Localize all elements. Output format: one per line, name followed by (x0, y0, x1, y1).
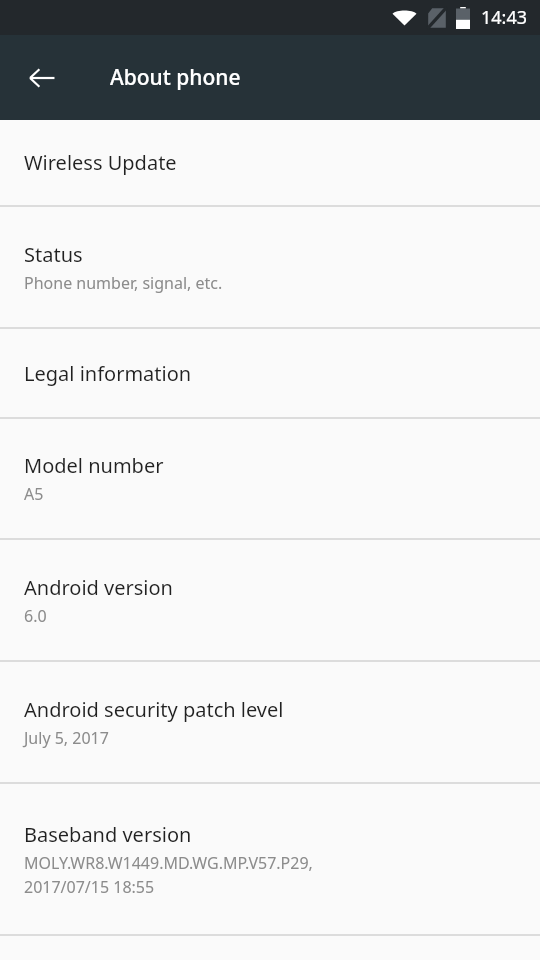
button[interactable]: Android security patch level (0, 662, 540, 782)
staticText: 14:43 (481, 5, 528, 30)
staticText: Wireless Update (24, 149, 177, 176)
staticText: 6.0 (24, 605, 47, 627)
button[interactable]: Android version (0, 540, 540, 660)
staticText: Android version (24, 574, 173, 601)
button[interactable]: Model number (0, 419, 540, 538)
staticText: Legal information (24, 360, 192, 387)
staticText: Model number (24, 452, 164, 479)
staticText: MOLY.WR8.W1449.MD.WG.MP.V57.P29, 2017/07… (24, 852, 313, 898)
button[interactable]: Back (14, 50, 70, 106)
staticText: A5 (24, 483, 44, 505)
staticText: Status (24, 241, 83, 268)
staticText: Android security patch level (24, 696, 284, 723)
button[interactable]: Baseband version (0, 784, 540, 934)
staticText: July 5, 2017 (24, 727, 109, 749)
button[interactable]: Status (0, 207, 540, 327)
button[interactable]: Legal information (0, 329, 540, 417)
button[interactable]: Wireless Update (0, 120, 540, 205)
staticText: About phone (110, 63, 241, 92)
staticText: Phone number, signal, etc. (24, 272, 223, 294)
staticText: Baseband version (24, 821, 192, 848)
